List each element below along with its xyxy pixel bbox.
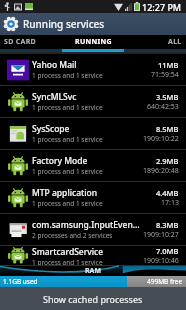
button[interactable]: Factory Mode	[0, 150, 186, 182]
staticText: 8.5MB	[156, 124, 179, 134]
staticText: 71:59:54	[151, 70, 179, 80]
staticText: SyncMLSvc	[32, 91, 77, 103]
staticText: 2 processes and 2 services	[32, 231, 113, 240]
staticText: Yahoo Mail	[32, 59, 77, 71]
staticText: SmartcardService	[32, 246, 104, 258]
staticText: 4.4MB	[156, 188, 179, 198]
staticText: RAM	[85, 266, 102, 276]
button[interactable]: Yahoo Mail	[0, 54, 186, 86]
button[interactable]: RUNNING	[62, 35, 124, 49]
staticText: 2.9MB	[156, 156, 179, 166]
button[interactable]: SmartcardService	[0, 246, 186, 266]
staticText: ALL	[168, 37, 182, 47]
staticText: RUNNING	[75, 37, 112, 47]
staticText: 1909:10:22	[143, 134, 179, 144]
button[interactable]: ALL	[124, 35, 186, 49]
staticText: 1909:10:27	[143, 230, 179, 240]
button[interactable]: Show cached processes	[0, 287, 186, 310]
button[interactable]: MTP application	[0, 182, 186, 214]
staticText: 1 process and 1 service	[32, 103, 103, 112]
staticText: 1.1GB used	[3, 277, 38, 286]
button[interactable]: SysScope	[0, 118, 186, 150]
staticText: 7.0MB	[156, 246, 179, 256]
staticText: 1 process and 1 service	[32, 258, 103, 265]
staticText: 12:27 PM	[142, 1, 182, 13]
staticText: 1 process and 1 service	[32, 135, 103, 144]
staticText: MTP application	[32, 187, 98, 199]
staticText: 11MB	[158, 60, 179, 70]
staticText: 1896:20:48	[143, 166, 179, 176]
button[interactable]: SyncMLSvc	[0, 86, 186, 118]
staticText: SysScope	[32, 123, 70, 135]
staticText: 640:42:53	[147, 102, 179, 112]
staticText: 8.3MB	[156, 220, 179, 230]
staticText: Factory Mode	[32, 155, 88, 167]
staticText: 1 process and 1 service	[32, 167, 103, 176]
other: Settings	[4, 17, 18, 31]
staticText: Show cached processes	[43, 293, 143, 305]
staticText: 17:13	[161, 198, 179, 208]
staticText: com.samsung.InputEventA..	[32, 219, 140, 231]
staticText: SD CARD	[4, 37, 36, 47]
button[interactable]: Settings	[0, 13, 186, 35]
staticText: 1 process and 1 service	[32, 71, 103, 80]
button[interactable]: com.samsung.InputEventA..	[0, 214, 186, 246]
button[interactable]: SD CARD	[0, 35, 62, 49]
staticText: 1 process and 1 service	[32, 199, 103, 208]
staticText: Running services	[23, 17, 105, 31]
staticText: 499MB free	[147, 277, 183, 286]
staticText: 1909:10:46	[143, 256, 179, 265]
staticText: 3.5MB	[156, 92, 179, 102]
